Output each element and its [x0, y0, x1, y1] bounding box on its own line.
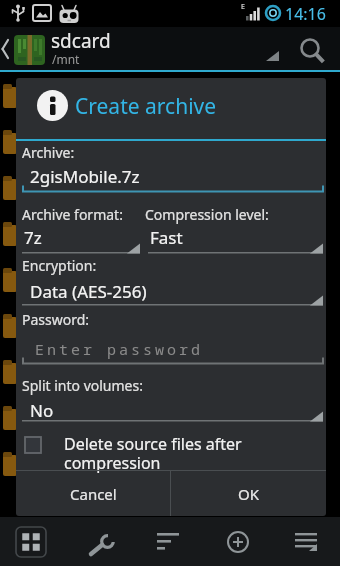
button[interactable]: [9, 520, 53, 564]
staticText: sdcard: [51, 28, 111, 54]
staticText: Split into volumes:: [22, 376, 143, 395]
button[interactable]: Cancel: [16, 471, 170, 516]
staticText: Enter password: [35, 339, 204, 359]
staticText: /mnt: [52, 51, 80, 67]
button[interactable]: 7z: [22, 226, 140, 253]
staticText: Compression level:: [145, 205, 269, 224]
staticText: E: [241, 2, 245, 12]
staticText: OK: [238, 484, 260, 504]
button[interactable]: [216, 520, 260, 564]
staticText: Data (AES-256): [30, 280, 147, 303]
button[interactable]: No: [22, 398, 323, 421]
staticText: Encryption:: [22, 256, 97, 275]
staticText: 14:16: [285, 3, 326, 25]
staticText: Archive:: [22, 143, 75, 162]
button[interactable]: Data (AES-256): [22, 278, 323, 305]
staticText: No: [30, 399, 54, 422]
button[interactable]: Enter password: [22, 333, 324, 364]
staticText: Password:: [22, 310, 90, 329]
button[interactable]: Fast: [148, 226, 323, 253]
button[interactable]: Delete source files after compression: [20, 430, 320, 470]
staticText: Archive format:: [22, 205, 123, 224]
staticText: 2gisMobile.7z: [30, 165, 140, 188]
staticText: Cancel: [70, 484, 117, 504]
staticText: 7z: [24, 226, 42, 249]
button[interactable]: [292, 32, 328, 68]
button[interactable]: [147, 520, 191, 564]
button[interactable]: 2gisMobile.7z: [22, 162, 324, 193]
staticText: Delete source files after compression: [64, 433, 242, 473]
button[interactable]: [285, 520, 329, 564]
button[interactable]: [78, 520, 122, 564]
staticText: Fast: [150, 226, 183, 249]
staticText: Create archive: [75, 92, 217, 121]
button[interactable]: OK: [171, 471, 326, 516]
